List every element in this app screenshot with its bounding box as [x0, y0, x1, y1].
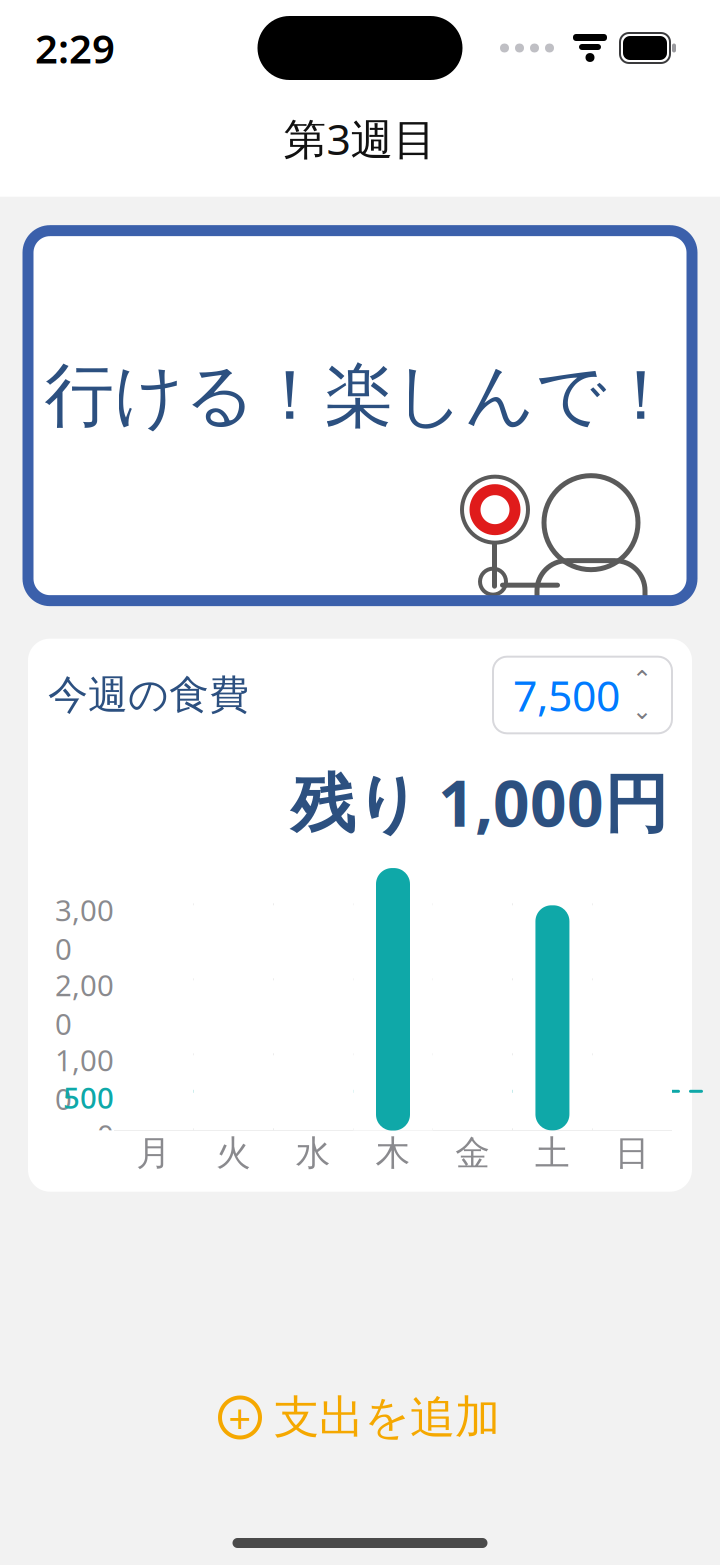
- staticText: 2,000: [55, 965, 114, 1043]
- staticText: 木: [375, 1132, 410, 1175]
- staticText: 火: [216, 1132, 251, 1175]
- staticText: 第3週目: [283, 110, 436, 167]
- button[interactable]: 第3週目: [0, 96, 720, 181]
- staticText: 2:29: [35, 21, 115, 74]
- staticText: 金: [455, 1132, 490, 1175]
- staticText: 3,000: [55, 890, 114, 968]
- staticText: 今週の食費: [48, 670, 249, 719]
- button[interactable]: 7,500: [493, 657, 672, 733]
- staticText: 7,500: [513, 667, 620, 723]
- staticText: 0: [97, 1115, 114, 1154]
- staticText: 月: [136, 1132, 171, 1175]
- staticText: 残り 1,000円: [291, 759, 668, 844]
- button[interactable]: +: [200, 1380, 520, 1455]
- staticText: ⌃: [632, 666, 652, 693]
- staticText: ⌄: [632, 697, 652, 724]
- staticText: 支出を追加: [274, 1390, 500, 1445]
- staticText: 日: [615, 1132, 650, 1175]
- staticText: 水: [296, 1132, 331, 1175]
- staticText: 500: [63, 1078, 114, 1117]
- staticText: +: [228, 1391, 251, 1444]
- staticText: 行ける！楽しんで！: [44, 353, 675, 438]
- staticText: 土: [535, 1132, 570, 1175]
- staticText: 1,000: [55, 1040, 114, 1118]
